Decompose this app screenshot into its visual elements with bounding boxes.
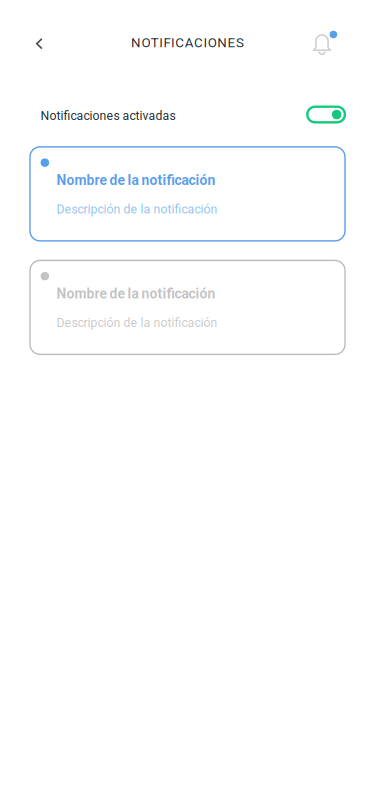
staticText: Nombre de la notificación	[57, 172, 216, 188]
button[interactable]: Nombre de la notificación	[30, 147, 345, 241]
staticText: NOTIFICACIONES	[131, 35, 247, 50]
staticText: Notificaciones activadas	[40, 108, 175, 123]
staticText: Descripción de la notificación	[57, 202, 218, 217]
button[interactable]: Back	[24, 28, 55, 59]
staticText: Nombre de la notificación	[57, 286, 216, 302]
button[interactable]: Nombre de la notificación	[30, 260, 345, 354]
button[interactable]: Notificaciones activadas	[300, 98, 352, 130]
staticText: Descripción de la notificación	[57, 316, 218, 330]
button[interactable]: Notifications	[307, 24, 343, 60]
